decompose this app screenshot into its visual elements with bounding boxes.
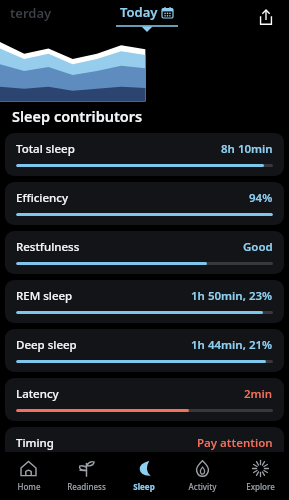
staticText: 1h 44min, 21% bbox=[191, 337, 273, 353]
staticText: Today bbox=[120, 3, 158, 21]
staticText: 1h 50min, 23% bbox=[191, 288, 273, 304]
staticText: Total sleep bbox=[16, 141, 75, 157]
staticText: Efficiency bbox=[16, 190, 68, 206]
staticText: Home bbox=[17, 481, 41, 492]
button[interactable]: Total sleep bbox=[5, 133, 284, 176]
staticText: Pay attention bbox=[197, 435, 273, 451]
staticText: Explore bbox=[246, 481, 275, 492]
button[interactable]: Today bbox=[112, 0, 181, 32]
button[interactable]: Readiness bbox=[57, 452, 115, 500]
staticText: Readiness bbox=[67, 481, 106, 492]
staticText: Timing bbox=[16, 435, 54, 451]
button[interactable]: Restfulness bbox=[5, 231, 284, 274]
staticText: 2min bbox=[244, 386, 273, 402]
button[interactable]: Activity bbox=[173, 452, 231, 500]
staticText: Good bbox=[243, 239, 273, 255]
button[interactable]: Timing bbox=[5, 427, 284, 470]
staticText: Sleep bbox=[133, 481, 155, 492]
button[interactable]: Share bbox=[253, 4, 279, 30]
button[interactable]: REM sleep bbox=[5, 280, 284, 323]
staticText: Latency bbox=[16, 386, 59, 402]
staticText: Deep sleep bbox=[16, 337, 77, 353]
button[interactable]: Sleep bbox=[115, 452, 173, 500]
button[interactable]: Deep sleep bbox=[5, 329, 284, 372]
button[interactable]: Home bbox=[0, 452, 57, 500]
staticText: Sleep contributors bbox=[12, 106, 143, 126]
staticText: 8h 10min bbox=[221, 141, 273, 157]
staticText: Activity bbox=[188, 481, 217, 492]
staticText: 94% bbox=[249, 190, 273, 206]
button[interactable]: Explore bbox=[231, 452, 289, 500]
button[interactable]: Efficiency bbox=[5, 182, 284, 225]
button[interactable]: terday bbox=[4, 0, 58, 26]
staticText: Restfulness bbox=[16, 239, 80, 255]
button[interactable]: Latency bbox=[5, 378, 284, 421]
staticText: REM sleep bbox=[16, 288, 73, 304]
staticText: terday bbox=[10, 4, 52, 22]
